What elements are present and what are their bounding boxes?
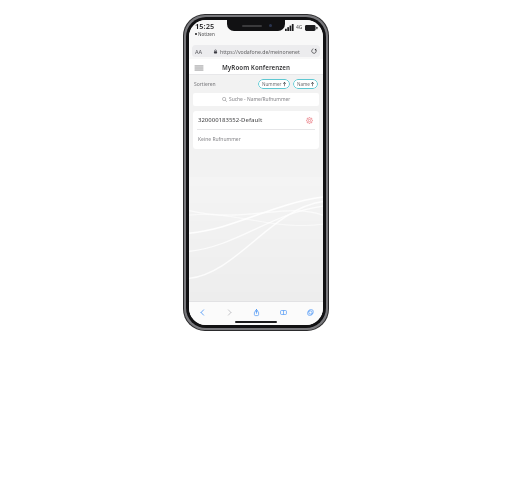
button[interactable]: Text size xyxy=(192,45,320,57)
button[interactable]: Forward xyxy=(223,306,235,318)
button[interactable]: Menu xyxy=(194,63,203,72)
staticText: Sortieren xyxy=(194,81,216,88)
staticText: Keine Rufnummer xyxy=(198,136,241,143)
button[interactable]: Text size xyxy=(195,48,203,55)
button[interactable]: Reload xyxy=(311,48,317,54)
button[interactable]: 320000183552-Default xyxy=(193,111,319,149)
staticText: Name xyxy=(297,81,310,87)
staticText: https://vodafone.de/meinonenet xyxy=(220,48,300,55)
button[interactable]: Back xyxy=(196,306,208,318)
staticText: 15:25 xyxy=(195,21,215,31)
button[interactable]: Name xyxy=(293,79,318,89)
staticText: Suche - Name/Rufnummer xyxy=(229,96,291,103)
button[interactable]: Tabs xyxy=(304,306,316,318)
button[interactable]: Bookmarks xyxy=(277,306,289,318)
staticText: Nummer xyxy=(262,81,282,87)
staticText: Notizen xyxy=(198,31,215,37)
button[interactable]: Suche - Name/Rufnummer xyxy=(193,93,319,106)
button[interactable]: Settings xyxy=(305,116,314,125)
staticText: AA xyxy=(195,48,203,55)
button[interactable]: Share xyxy=(250,306,262,318)
staticText: MyRoom Konferenzen xyxy=(222,63,291,71)
staticText: 320000183552-Default xyxy=(198,116,263,124)
button[interactable]: Nummer xyxy=(258,79,290,89)
staticText: 4G xyxy=(296,24,303,31)
